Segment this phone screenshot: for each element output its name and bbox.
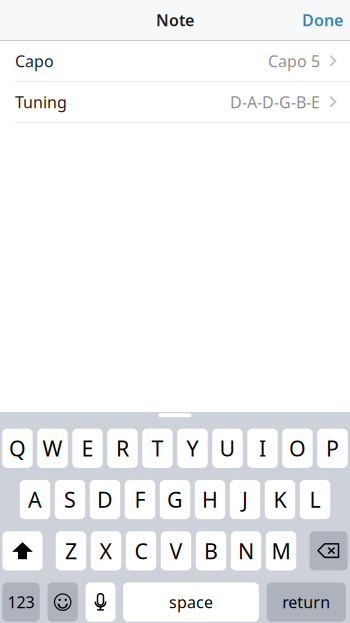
button[interactable]: M <box>266 531 296 570</box>
button[interactable]: space <box>123 582 259 622</box>
button[interactable]: W <box>37 429 68 468</box>
button[interactable]: Emoji <box>47 582 78 622</box>
button[interactable]: Z <box>56 531 86 570</box>
staticText: Tuning <box>15 91 67 113</box>
staticText: D <box>97 485 113 514</box>
button[interactable]: S <box>55 480 85 519</box>
staticText: Y <box>186 434 198 462</box>
button[interactable]: B <box>196 531 226 570</box>
button[interactable]: D <box>90 480 120 519</box>
button[interactable]: I <box>247 429 278 468</box>
staticText: G <box>167 485 183 514</box>
button[interactable]: Shift <box>2 531 42 570</box>
button[interactable]: T <box>142 429 173 468</box>
button[interactable]: N <box>231 531 261 570</box>
button[interactable]: Y <box>177 429 208 468</box>
staticText: Note <box>156 9 194 31</box>
staticText: B <box>204 537 218 565</box>
staticText: N <box>238 537 254 565</box>
staticText: Q <box>9 434 26 462</box>
staticText: P <box>326 434 339 462</box>
staticText: E <box>81 434 93 462</box>
staticText: F <box>134 485 145 514</box>
button[interactable]: U <box>212 429 243 468</box>
button[interactable]: L <box>300 480 330 519</box>
staticText: H <box>202 485 218 514</box>
staticText: R <box>116 434 129 462</box>
staticText: Capo <box>15 50 54 72</box>
staticText: D-A-D-G-B-E <box>230 91 320 113</box>
button[interactable]: P <box>317 429 348 468</box>
staticText: S <box>64 485 76 514</box>
staticText: Capo 5 <box>268 50 320 72</box>
staticText: space <box>169 591 213 613</box>
staticText: J <box>242 485 248 514</box>
button[interactable]: A <box>20 480 50 519</box>
button[interactable]: Done <box>302 0 350 41</box>
button[interactable]: Tuning <box>0 82 350 123</box>
button[interactable]: C <box>126 531 156 570</box>
button[interactable]: J <box>230 480 260 519</box>
button[interactable]: H <box>195 480 225 519</box>
button[interactable]: O <box>282 429 313 468</box>
staticText: Done <box>302 9 343 31</box>
button[interactable]: 123 <box>2 582 40 622</box>
staticText: X <box>99 537 112 565</box>
staticText: O <box>289 434 306 462</box>
button[interactable]: F <box>125 480 155 519</box>
button[interactable]: Q <box>2 429 33 468</box>
staticText: W <box>42 434 62 462</box>
staticText: C <box>134 537 147 565</box>
button[interactable]: E <box>72 429 103 468</box>
staticText: I <box>259 434 266 462</box>
button[interactable]: Capo <box>0 41 350 82</box>
button[interactable]: R <box>107 429 138 468</box>
button[interactable]: G <box>160 480 190 519</box>
staticText: A <box>28 485 42 514</box>
button[interactable]: Dictation <box>86 582 115 622</box>
button[interactable]: Delete <box>309 531 347 570</box>
button[interactable]: K <box>265 480 295 519</box>
staticText: M <box>271 537 290 565</box>
staticText: U <box>219 434 235 462</box>
staticText: V <box>169 537 182 565</box>
staticText: K <box>273 485 286 514</box>
staticText: return <box>282 591 330 613</box>
button[interactable]: X <box>91 531 121 570</box>
staticText: L <box>309 485 320 514</box>
staticText: 123 <box>8 591 35 613</box>
staticText: Z <box>65 537 77 565</box>
button[interactable]: return <box>267 582 346 622</box>
staticText: T <box>151 434 163 462</box>
button[interactable]: V <box>161 531 191 570</box>
